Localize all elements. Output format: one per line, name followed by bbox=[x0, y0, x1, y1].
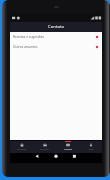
button[interactable]: Outros assuntos bbox=[10, 42, 102, 52]
button[interactable]: Contato bbox=[56, 141, 79, 153]
staticText: Produtos bbox=[17, 148, 26, 151]
button[interactable]: Produtos bbox=[10, 141, 33, 153]
button[interactable]: Carrinho bbox=[33, 141, 56, 153]
staticText: Contato bbox=[48, 24, 65, 30]
staticText: Outros assuntos bbox=[13, 45, 95, 49]
staticText: Receitas e sugestões bbox=[13, 35, 95, 39]
button[interactable]: Receitas e sugestões bbox=[10, 32, 102, 42]
staticText: Contato bbox=[64, 148, 72, 151]
button[interactable]: Perfil bbox=[79, 141, 102, 153]
staticText: Carrinho bbox=[40, 148, 49, 151]
staticText: Perfil bbox=[88, 148, 94, 151]
